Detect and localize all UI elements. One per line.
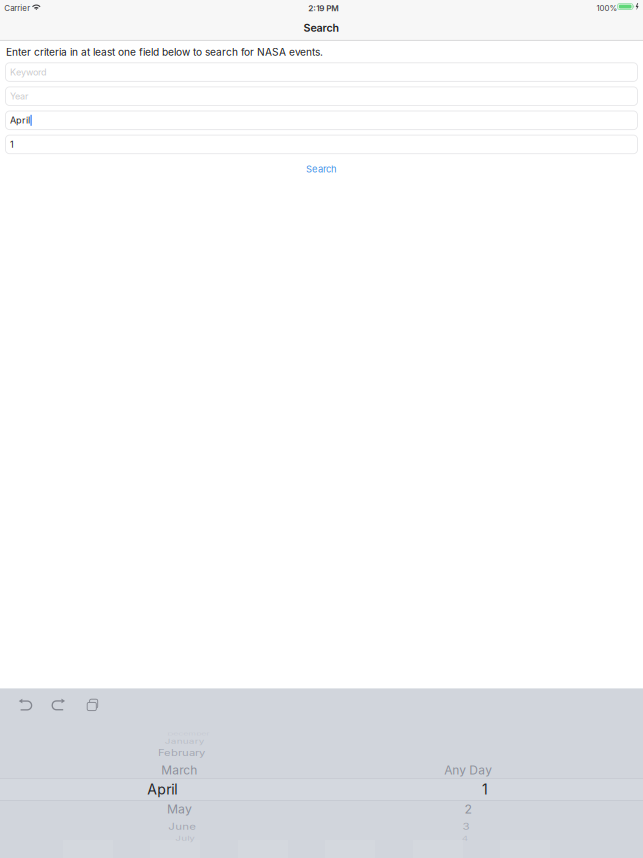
staticText: Enter criteria in at least one field bel… xyxy=(6,46,323,58)
button[interactable]: Paste xyxy=(87,699,101,711)
staticText: 4 xyxy=(462,832,468,844)
staticText: 1 xyxy=(482,781,488,798)
staticText: April xyxy=(10,115,30,126)
button[interactable]: Search xyxy=(0,163,643,174)
button[interactable]: Redo xyxy=(52,698,65,710)
staticText: July xyxy=(175,832,195,844)
staticText: Carrier xyxy=(4,3,30,13)
staticText: February xyxy=(158,746,205,760)
staticText: January xyxy=(165,735,205,747)
staticText: 3 xyxy=(463,820,470,834)
button[interactable]: April xyxy=(5,111,637,130)
staticText: Year xyxy=(10,91,28,102)
button[interactable]: 1 xyxy=(5,135,637,154)
staticText: May xyxy=(167,802,192,817)
button[interactable]: Year xyxy=(5,87,637,105)
staticText: 2 xyxy=(464,802,471,817)
staticText: Search xyxy=(306,163,337,175)
staticText: Any Day xyxy=(444,763,492,778)
staticText: Keyword xyxy=(10,67,47,78)
staticText: Search xyxy=(303,21,339,34)
staticText: June xyxy=(168,820,196,834)
button[interactable]: Keyword xyxy=(5,63,637,81)
staticText: 1 xyxy=(10,139,14,150)
staticText: March xyxy=(161,763,197,778)
staticText: 100% xyxy=(597,3,618,13)
staticText: April xyxy=(147,781,177,798)
staticText: 2:19 PM xyxy=(308,3,339,13)
button[interactable]: Undo xyxy=(19,698,32,710)
